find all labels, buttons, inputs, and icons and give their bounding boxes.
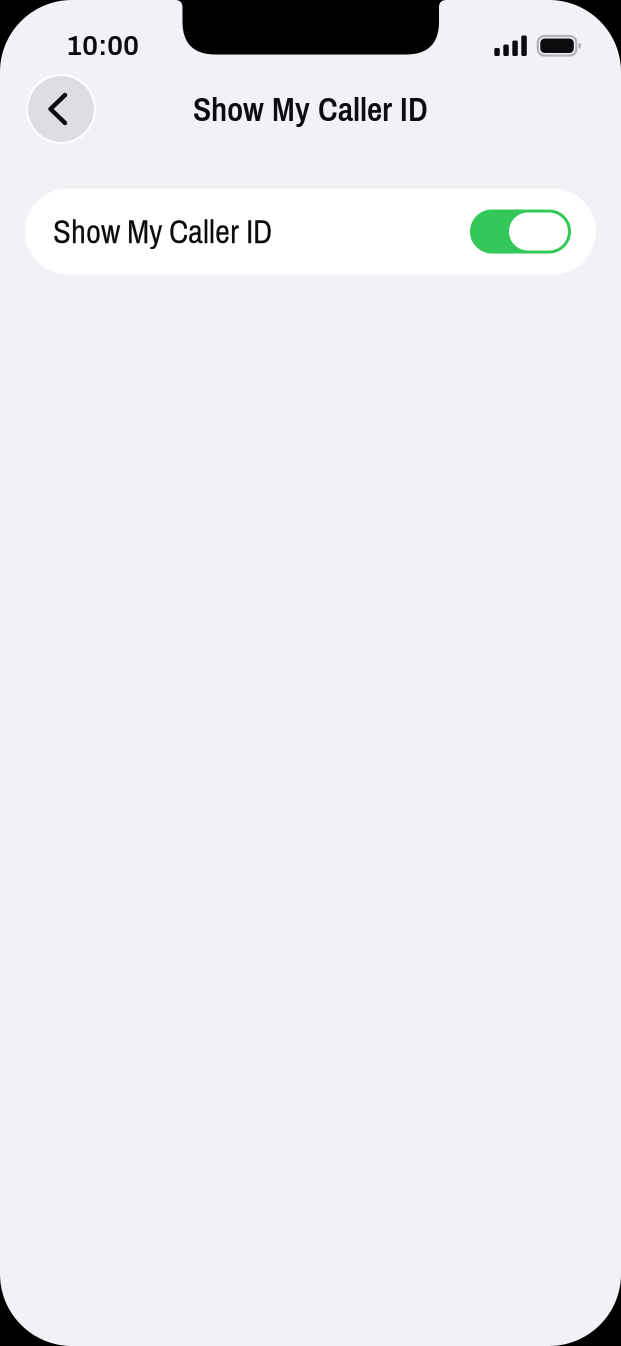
staticText: Show My Caller ID (193, 87, 428, 131)
button[interactable]: Show My Caller ID (25, 188, 596, 274)
button[interactable]: Back (27, 75, 95, 143)
staticText: 10:00 (66, 30, 139, 61)
staticText: Show My Caller ID (53, 209, 272, 253)
button[interactable]: Show My Caller ID (470, 209, 571, 253)
